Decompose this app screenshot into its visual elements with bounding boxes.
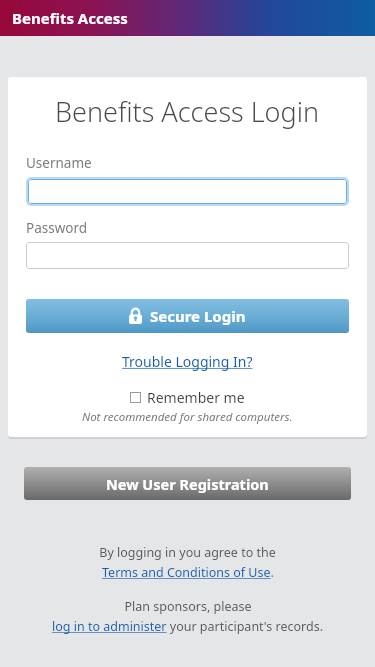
staticText: Trouble Logging In? [122, 352, 253, 371]
other: Secure [129, 308, 142, 324]
button[interactable]: Secure [26, 299, 349, 333]
staticText: Not recommended for shared computers. [82, 409, 293, 425]
staticText: Benefits Access [12, 8, 128, 28]
staticText: Secure Login [150, 306, 246, 326]
button[interactable] [28, 179, 347, 204]
staticText: New User Registration [106, 474, 269, 494]
button[interactable]: Terms and Conditions of Use. [102, 564, 274, 581]
button[interactable]: Remember me [26, 388, 349, 407]
button[interactable]: New User Registration [24, 467, 351, 500]
button[interactable] [26, 242, 349, 269]
staticText: Plan sponsors, please [124, 598, 252, 615]
staticText: Terms and Conditions of Use. [102, 564, 274, 581]
staticText: By logging in you agree to the [99, 544, 276, 561]
staticText: Benefits Access Login [55, 93, 320, 130]
staticText: Username [26, 154, 92, 172]
staticText: Password [26, 219, 88, 237]
staticText: Remember me [147, 388, 245, 407]
button[interactable]: log in to administer your participant's … [52, 618, 324, 635]
staticText: log in to administer your participant's … [52, 618, 324, 635]
button[interactable]: Trouble Logging In? [122, 352, 253, 371]
